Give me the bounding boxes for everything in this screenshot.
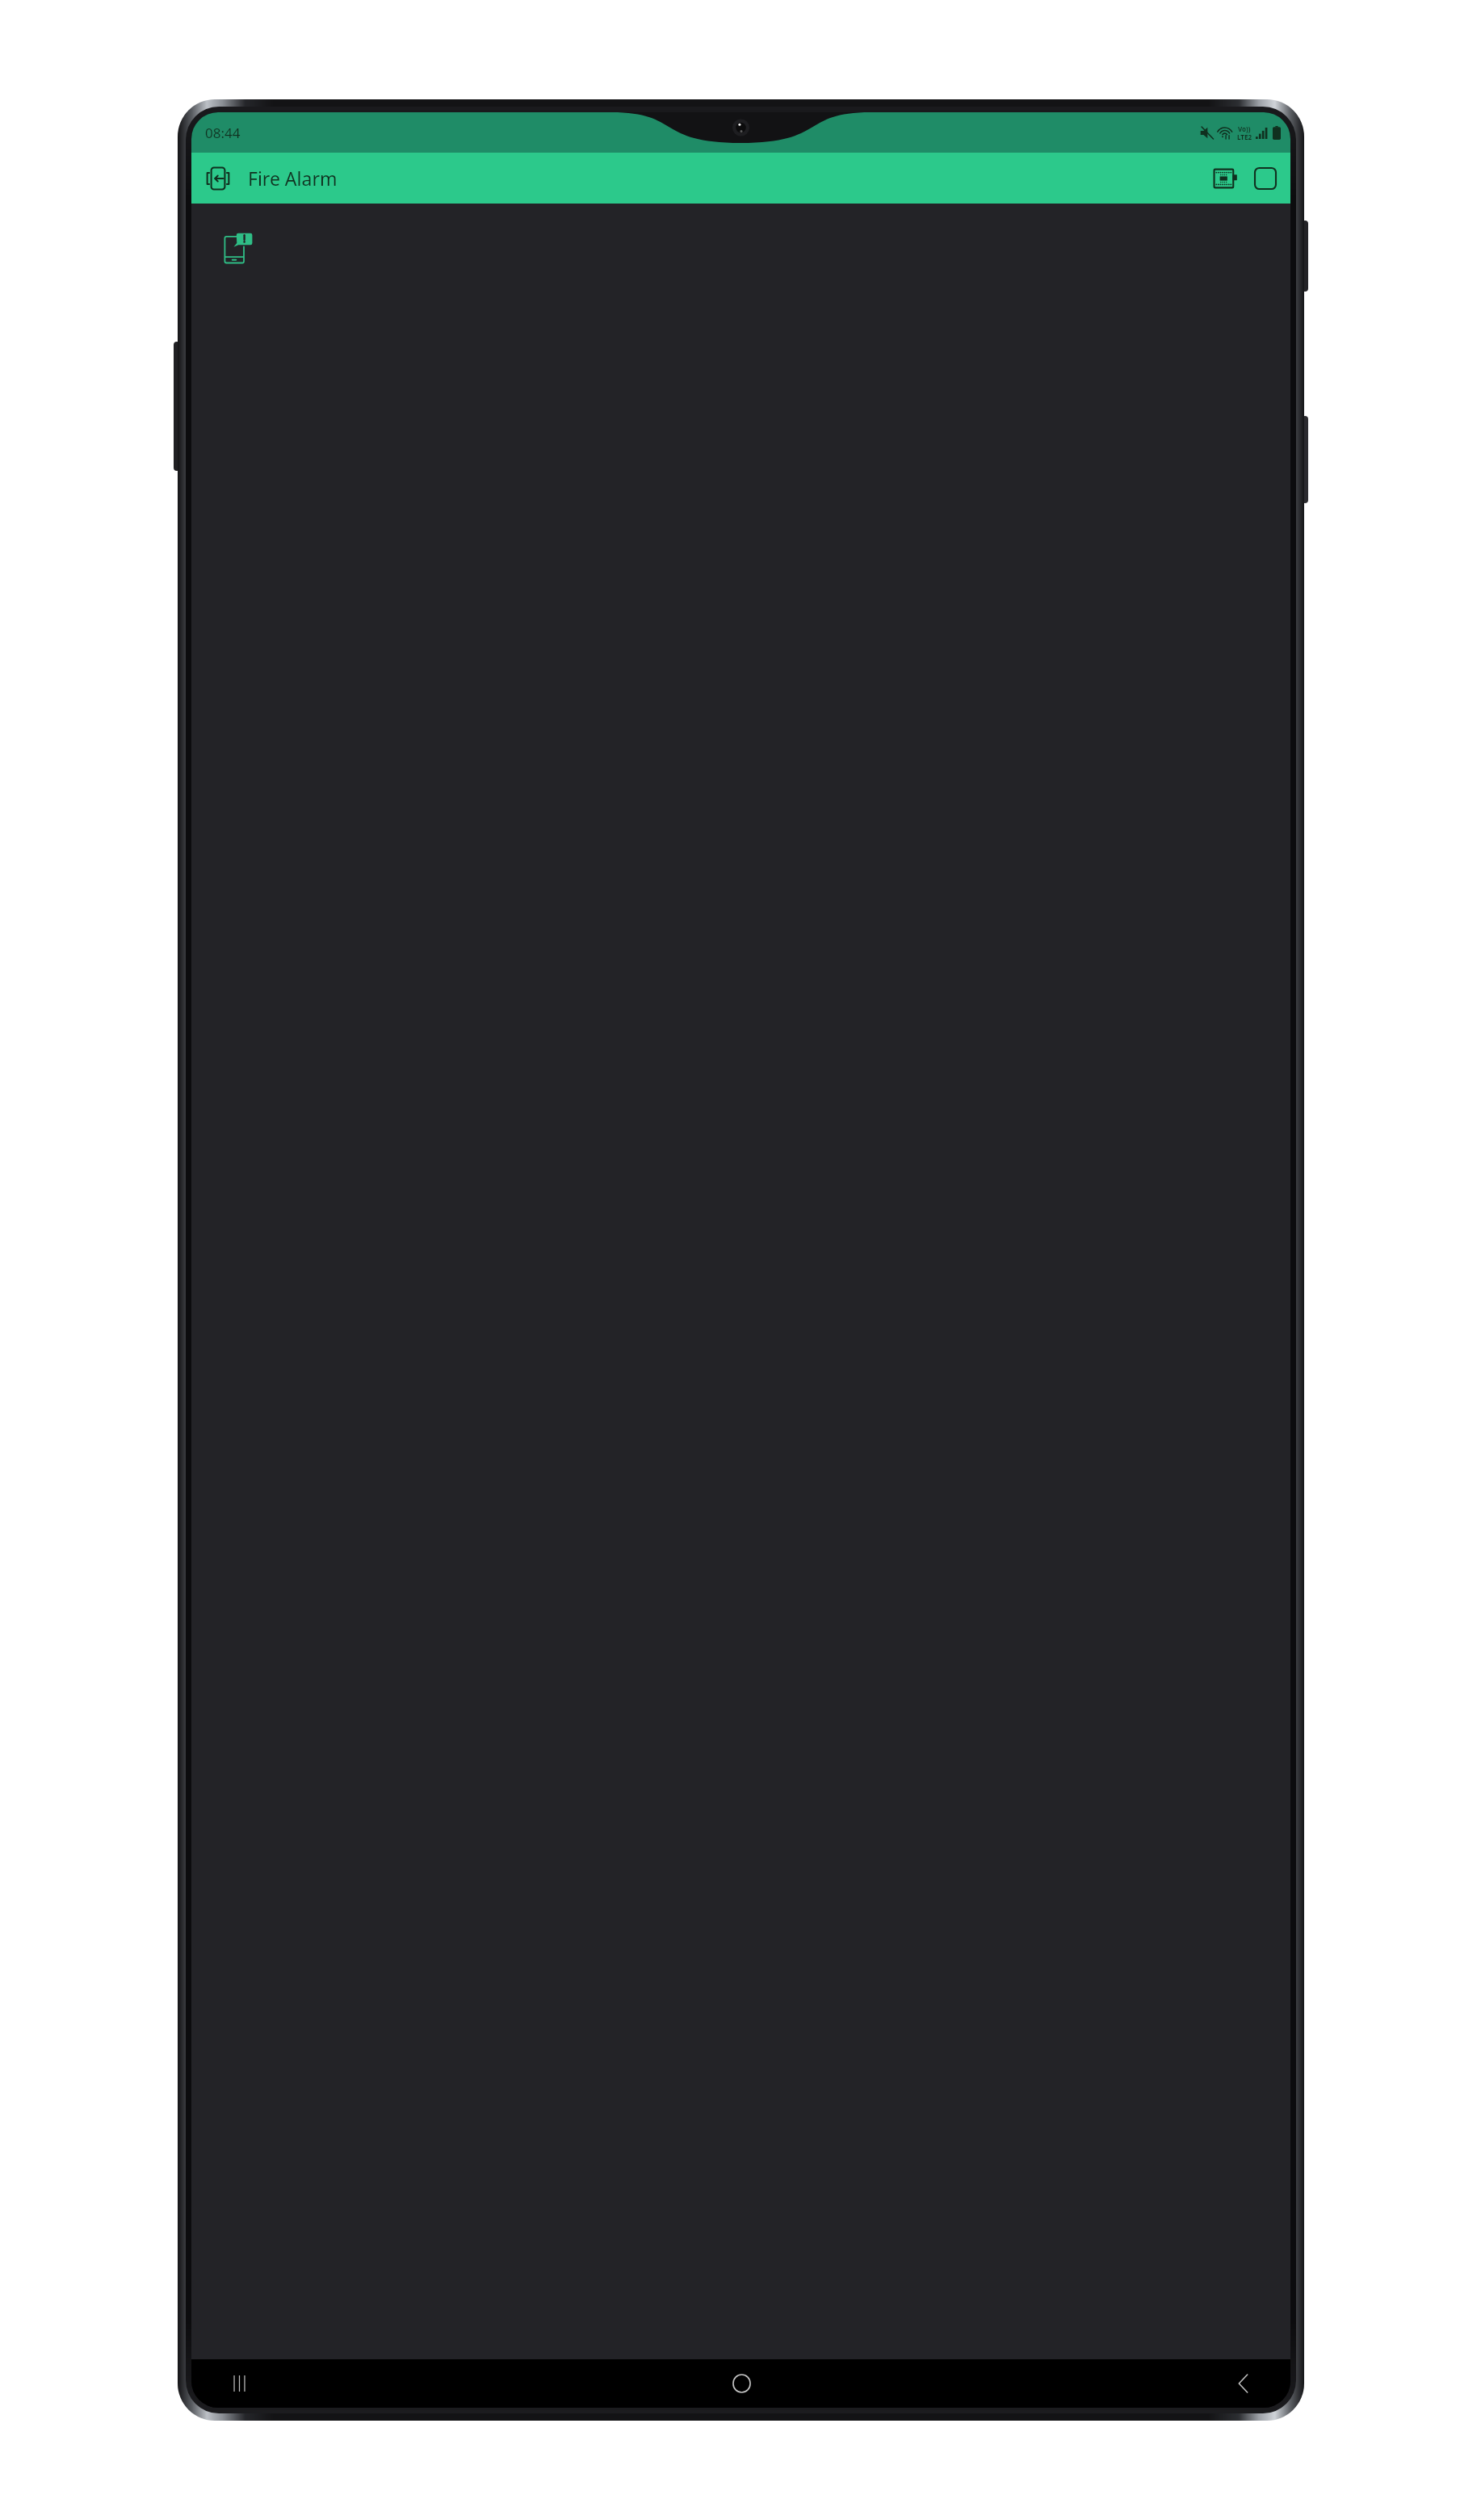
staticText: LTE2 <box>1237 132 1252 141</box>
button[interactable]: Back <box>1219 2360 1266 2407</box>
button[interactable]: Stop <box>1245 158 1286 199</box>
button[interactable]: Home <box>718 2360 765 2407</box>
staticText: Fire Alarm <box>248 166 338 191</box>
staticText: Vo)) <box>1238 124 1251 133</box>
staticText: 08:44 <box>205 124 241 142</box>
button[interactable]: Recent apps <box>216 2360 262 2407</box>
button[interactable]: Device alert notification <box>221 230 254 267</box>
button[interactable]: Hardware settings <box>1205 158 1245 199</box>
button[interactable]: Exit application <box>198 158 238 199</box>
